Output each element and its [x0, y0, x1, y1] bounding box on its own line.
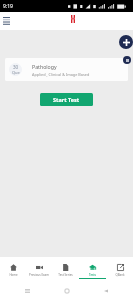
- button[interactable]: QBank: [106, 257, 133, 285]
- button[interactable]: More options: [123, 56, 131, 64]
- staticText: 30: [13, 64, 19, 70]
- button[interactable]: Add: [119, 35, 133, 49]
- staticText: QBank: [115, 273, 125, 277]
- staticText: Pathology: [32, 63, 57, 70]
- button[interactable]: Back: [93, 285, 119, 296]
- staticText: Que: [12, 70, 20, 75]
- staticText: Start Test: [53, 96, 80, 103]
- staticText: Tests: [89, 273, 96, 277]
- staticText: Home: [9, 273, 18, 277]
- staticText: Previous Exam: [29, 273, 49, 277]
- button[interactable]: Previous Exam: [26, 257, 52, 285]
- staticText: Applied , Clinical & Image Based: [32, 72, 90, 77]
- button[interactable]: Start Test: [40, 93, 93, 106]
- button[interactable]: Tests: [79, 257, 106, 285]
- button[interactable]: Recent apps: [14, 285, 40, 296]
- staticText: 9:19: [3, 3, 13, 10]
- staticText: Test Series: [58, 273, 73, 277]
- button[interactable]: Home: [54, 285, 80, 296]
- button[interactable]: 30: [5, 58, 128, 81]
- button[interactable]: Home: [0, 257, 26, 285]
- button[interactable]: Open navigation menu: [0, 12, 12, 30]
- button[interactable]: Test Series: [52, 257, 79, 285]
